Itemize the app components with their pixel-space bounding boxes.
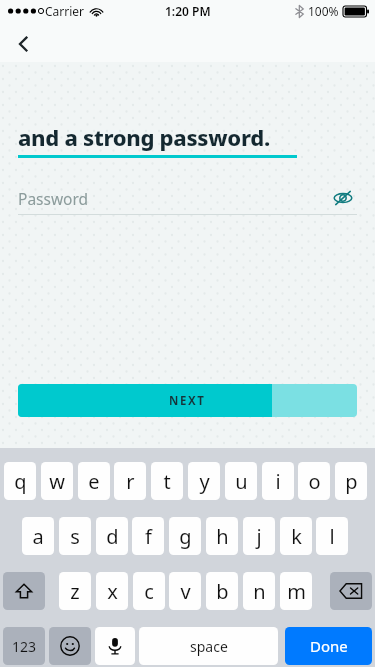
button[interactable]: l xyxy=(316,517,348,555)
button[interactable]: k xyxy=(280,517,312,555)
button[interactable]: x xyxy=(96,572,128,610)
staticText: c xyxy=(144,578,154,605)
button[interactable]: e xyxy=(78,462,110,500)
staticText: u xyxy=(235,468,248,495)
button[interactable]: c xyxy=(133,572,165,610)
button[interactable]: Done xyxy=(285,627,372,665)
button[interactable]: w xyxy=(41,462,73,500)
staticText: Password xyxy=(18,188,329,209)
button[interactable]: NEXT xyxy=(18,384,357,417)
staticText: t xyxy=(163,468,171,495)
button[interactable]: Show password xyxy=(329,184,357,212)
button[interactable]: d xyxy=(96,517,128,555)
button[interactable]: u xyxy=(225,462,257,500)
staticText: d xyxy=(106,523,119,550)
staticText: j xyxy=(256,523,262,550)
staticText: o xyxy=(308,468,321,495)
button[interactable]: t xyxy=(151,462,183,500)
button[interactable]: p xyxy=(335,462,367,500)
button[interactable]: a xyxy=(22,517,54,555)
button[interactable]: m xyxy=(280,572,312,610)
button[interactable]: r xyxy=(114,462,146,500)
button[interactable]: Emoji xyxy=(49,627,91,665)
button[interactable]: o xyxy=(298,462,330,500)
staticText: v xyxy=(180,578,191,605)
staticText: 123 xyxy=(12,637,37,656)
staticText: g xyxy=(179,523,192,550)
button[interactable]: q xyxy=(4,462,36,500)
staticText: 1:20 PM xyxy=(165,3,211,19)
staticText: 100% xyxy=(308,3,339,19)
button[interactable]: Backspace xyxy=(330,572,372,610)
staticText: l xyxy=(329,523,335,550)
staticText: x xyxy=(107,578,118,605)
staticText: k xyxy=(291,523,302,550)
button[interactable]: j xyxy=(243,517,275,555)
button[interactable]: i xyxy=(262,462,294,500)
staticText: and a strong password. xyxy=(18,122,270,152)
staticText: a xyxy=(32,523,44,550)
staticText: NEXT xyxy=(169,393,206,409)
button[interactable]: y xyxy=(188,462,220,500)
staticText: y xyxy=(199,468,210,495)
staticText: p xyxy=(345,468,358,495)
staticText: h xyxy=(216,523,229,550)
button[interactable]: g xyxy=(169,517,201,555)
button[interactable]: h xyxy=(206,517,238,555)
button[interactable]: v xyxy=(169,572,201,610)
staticText: Carrier xyxy=(45,3,85,19)
staticText: m xyxy=(287,578,306,605)
staticText: w xyxy=(49,468,65,495)
staticText: r xyxy=(126,468,135,495)
button[interactable]: b xyxy=(206,572,238,610)
staticText: n xyxy=(253,578,266,605)
button[interactable]: Numbers xyxy=(3,627,45,665)
button[interactable]: Back xyxy=(6,26,42,62)
staticText: s xyxy=(70,523,80,550)
button[interactable]: Password xyxy=(0,183,375,213)
button[interactable]: z xyxy=(59,572,91,610)
button[interactable]: f xyxy=(132,517,164,555)
button[interactable]: Shift xyxy=(3,572,45,610)
staticText: b xyxy=(216,578,229,605)
staticText: q xyxy=(14,468,27,495)
button[interactable]: Dictation xyxy=(95,627,135,665)
staticText: f xyxy=(145,523,152,550)
staticText: space xyxy=(190,637,228,656)
button[interactable]: n xyxy=(243,572,275,610)
button[interactable]: Space xyxy=(139,627,278,665)
staticText: Done xyxy=(310,636,348,656)
staticText: e xyxy=(88,468,100,495)
staticText: i xyxy=(275,468,281,495)
button[interactable]: s xyxy=(59,517,91,555)
staticText: z xyxy=(70,578,80,605)
